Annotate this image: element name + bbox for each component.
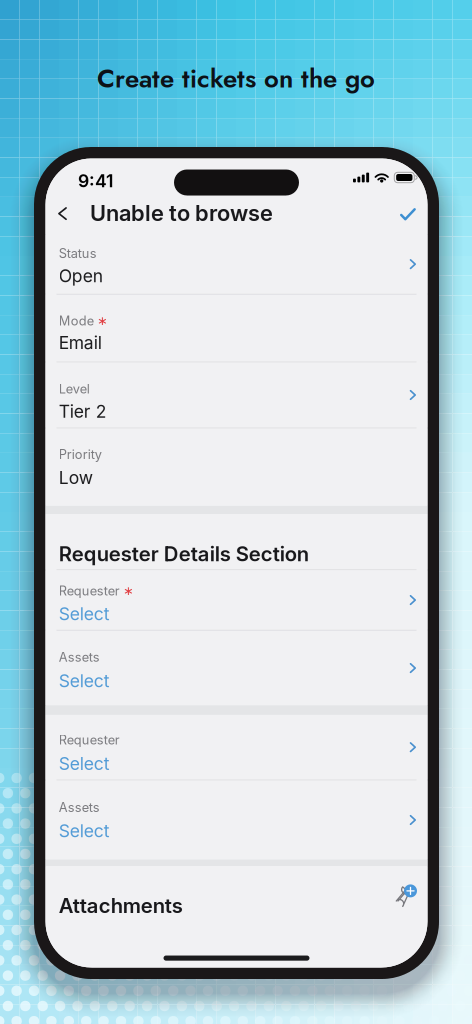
staticText: Level bbox=[59, 381, 90, 397]
staticText: Requester bbox=[59, 732, 120, 748]
staticText: Assets bbox=[59, 649, 100, 665]
staticText: Priority bbox=[59, 447, 102, 462]
staticText: Mode bbox=[59, 313, 94, 328]
staticText: Unable to browse bbox=[90, 200, 273, 226]
staticText: Email bbox=[59, 332, 102, 353]
staticText: ∗ bbox=[97, 313, 108, 328]
staticText: Attachments bbox=[59, 893, 183, 918]
button[interactable]: Save bbox=[389, 192, 427, 234]
staticText: Select bbox=[59, 820, 110, 841]
staticText: Tier 2 bbox=[59, 401, 107, 422]
staticText: Assets bbox=[59, 800, 100, 815]
button[interactable]: Assets bbox=[45, 631, 427, 705]
button[interactable]: Level bbox=[45, 362, 427, 427]
button[interactable]: Requester Details Section bbox=[45, 514, 427, 569]
staticText: 9:41 bbox=[78, 170, 113, 191]
staticText: Select bbox=[59, 753, 110, 774]
button[interactable]: Requester bbox=[45, 715, 427, 779]
button[interactable]: Status bbox=[45, 234, 427, 294]
staticText: Requester Details Section bbox=[59, 542, 309, 566]
staticText: ∗ bbox=[123, 583, 134, 598]
staticText: Requester bbox=[59, 583, 120, 598]
staticText: Status bbox=[59, 246, 97, 261]
button[interactable]: Mode bbox=[45, 295, 427, 361]
staticText: Select bbox=[59, 670, 110, 691]
staticText: Low bbox=[59, 467, 93, 488]
button[interactable]: Assets bbox=[45, 780, 427, 859]
button[interactable]: Priority bbox=[45, 428, 427, 506]
staticText: Open bbox=[59, 265, 103, 286]
staticText: Create tickets on the go bbox=[97, 60, 375, 97]
button[interactable]: Attachments bbox=[45, 866, 427, 967]
button[interactable]: Back bbox=[49, 192, 83, 234]
button[interactable]: Requester bbox=[45, 570, 427, 630]
staticText: Select bbox=[59, 603, 110, 624]
